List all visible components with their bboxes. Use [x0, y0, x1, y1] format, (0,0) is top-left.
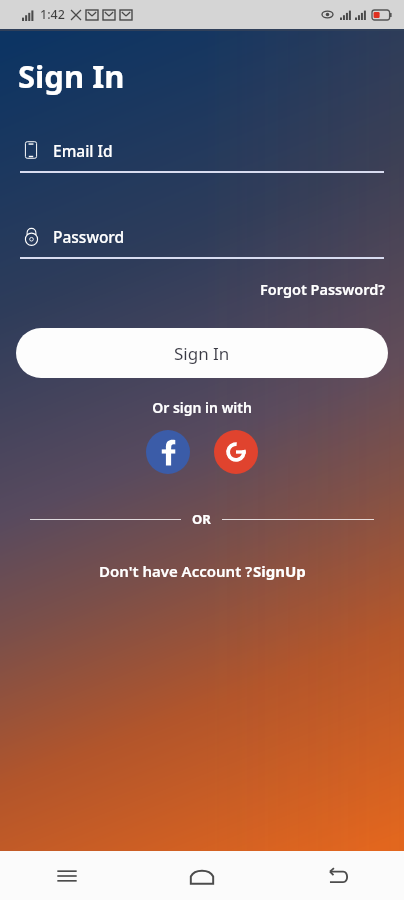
button[interactable]: Password	[0, 221, 404, 259]
button[interactable]: Recent apps	[0, 851, 134, 900]
staticText: SignUp	[253, 561, 306, 581]
button[interactable]: Forgot Password?	[256, 276, 390, 302]
staticText: Sign In	[174, 342, 230, 365]
staticText: 1:42	[40, 6, 65, 23]
staticText: Password	[53, 226, 125, 247]
button[interactable]: SignUp	[253, 561, 306, 581]
staticText: Forgot Password?	[260, 279, 386, 299]
button[interactable]: Back	[269, 851, 404, 900]
button[interactable]: Sign in with Facebook	[146, 430, 190, 474]
button[interactable]: Home	[134, 851, 269, 900]
staticText: OR	[192, 510, 211, 528]
button[interactable]: Sign In	[16, 328, 388, 378]
button[interactable]: Sign in with Google	[214, 430, 258, 474]
staticText: Sign In	[18, 55, 125, 97]
staticText: Email Id	[53, 140, 113, 161]
staticText: Or sign in with	[0, 398, 404, 417]
staticText: Don't have Account ?	[99, 561, 253, 581]
button[interactable]: Email Id	[0, 135, 404, 173]
